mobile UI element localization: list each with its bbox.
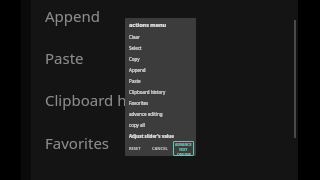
staticText: ONLINE <box>177 152 191 155</box>
staticText: Clipboard hi <box>45 90 131 110</box>
staticText: ADVANCE <box>175 142 192 147</box>
staticText: Adjust slider's value <box>129 133 174 139</box>
button[interactable]: advance editing <box>125 108 196 119</box>
button[interactable]: CANCEL <box>151 144 169 153</box>
button[interactable]: RESET <box>128 144 142 153</box>
button[interactable]: Confirm <box>173 141 194 156</box>
staticText: Paste <box>45 48 84 68</box>
staticText: Append <box>45 6 100 26</box>
button[interactable]: Copy <box>125 53 196 64</box>
staticText: TEXT <box>179 147 188 152</box>
staticText: Copy <box>129 56 140 62</box>
button[interactable]: Favorites <box>125 97 196 108</box>
button[interactable]: copy all <box>125 119 196 130</box>
button[interactable]: Clear <box>125 31 196 42</box>
button[interactable]: Append <box>125 64 196 75</box>
staticText: copy all <box>129 122 145 128</box>
staticText: Favorites <box>45 133 110 153</box>
staticText: actions menu <box>129 21 167 28</box>
staticText: Favorites <box>129 100 149 106</box>
staticText: Append <box>129 67 146 73</box>
staticText: Paste <box>129 78 141 84</box>
staticText: Clear <box>129 34 140 40</box>
button[interactable]: Select <box>125 42 196 53</box>
button[interactable]: Paste <box>125 75 196 86</box>
button[interactable]: Adjust slider's value <box>125 130 196 141</box>
staticText: RESET <box>129 146 141 151</box>
staticText: Select <box>129 45 142 51</box>
staticText: advance editing <box>129 111 163 117</box>
button[interactable]: Clipboard history <box>125 86 196 97</box>
staticText: Clipboard history <box>129 89 166 95</box>
staticText: CANCEL <box>152 146 168 151</box>
